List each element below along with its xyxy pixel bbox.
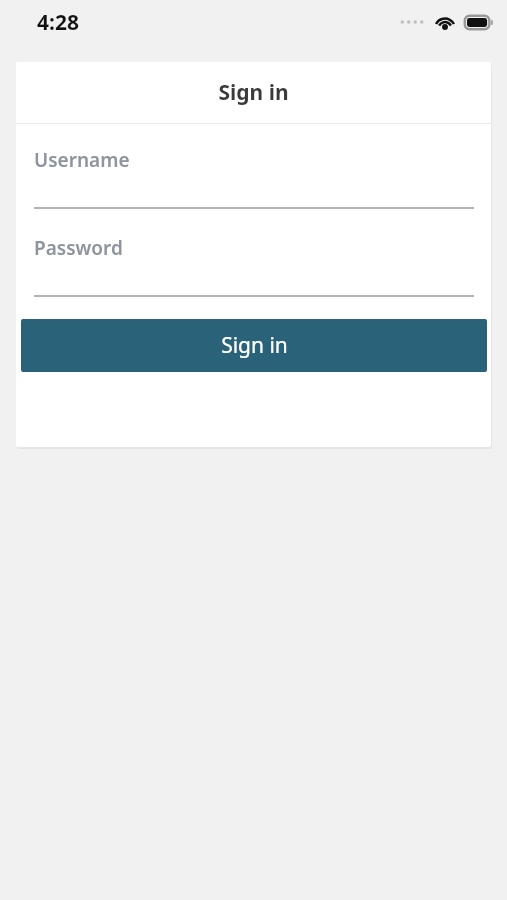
staticText: 4:28 <box>37 8 79 37</box>
button[interactable]: Username <box>16 124 491 209</box>
staticText: Sign in <box>218 78 289 107</box>
button[interactable]: Password <box>16 209 491 297</box>
staticText: Password <box>34 235 123 261</box>
button[interactable]: Sign in <box>21 319 487 372</box>
staticText: Sign in <box>221 331 288 360</box>
staticText: Username <box>34 147 130 173</box>
